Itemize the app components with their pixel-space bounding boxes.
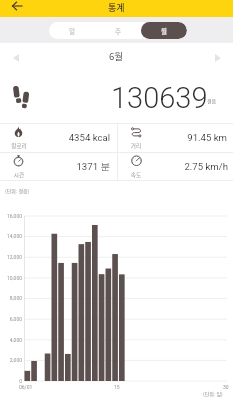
staticText: 06/01 xyxy=(19,384,33,390)
button[interactable]: 속도 xyxy=(117,152,233,180)
staticText: 8,000 xyxy=(0,295,22,301)
staticText: 2,000 xyxy=(0,357,22,363)
staticText: 칼로리 xyxy=(8,142,30,150)
staticText: 16,000 xyxy=(0,213,22,219)
button[interactable]: Previous month xyxy=(8,50,24,66)
staticText: (단위: 일) xyxy=(203,390,223,397)
staticText: 걸음 xyxy=(207,97,217,104)
staticText: 4,000 xyxy=(0,337,22,343)
button[interactable]: 거리 xyxy=(117,123,233,152)
staticText: 일 xyxy=(69,26,75,35)
staticText: 14,000 xyxy=(0,233,22,239)
button[interactable]: Back xyxy=(6,0,27,12)
staticText: 0 xyxy=(0,378,22,384)
staticText: 30 xyxy=(223,384,229,390)
staticText: 주 xyxy=(115,26,121,35)
staticText: 130639 xyxy=(111,81,208,115)
button[interactable]: 월 xyxy=(141,22,187,39)
staticText: 월 xyxy=(161,26,167,35)
staticText: 속도 xyxy=(125,171,147,179)
staticText: 15 xyxy=(114,384,120,390)
staticText: 통계 xyxy=(108,1,125,14)
staticText: 1371 분 xyxy=(0,161,110,173)
staticText: 거리 xyxy=(125,142,147,150)
staticText: (단위: 걸음) xyxy=(5,187,30,194)
staticText: 시간 xyxy=(8,171,30,179)
staticText: 2.75 km/h xyxy=(117,161,228,172)
button[interactable]: Next month xyxy=(210,50,226,66)
button[interactable]: 칼로리 xyxy=(0,123,117,152)
staticText: 12,000 xyxy=(0,254,22,260)
button[interactable]: 시간 xyxy=(0,152,117,180)
staticText: 91.45 km xyxy=(117,132,227,143)
staticText: 6월 xyxy=(109,49,124,63)
button[interactable]: 일 xyxy=(49,22,95,39)
button[interactable]: 주 xyxy=(95,22,141,39)
staticText: 10,000 xyxy=(0,275,22,281)
staticText: 6,000 xyxy=(0,316,22,322)
staticText: 4354 kcal xyxy=(0,132,110,143)
